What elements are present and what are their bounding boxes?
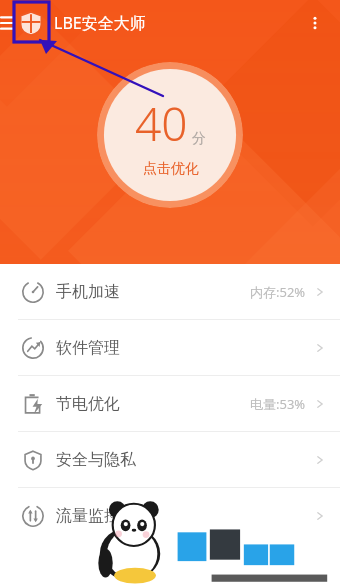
staticText: 40 [135,92,188,155]
staticText: 电量:53% [250,395,306,413]
staticText: 安全与隐私 [56,450,136,470]
button[interactable]: 流量监控 [0,488,340,543]
staticText: 手机加速 [56,282,120,302]
staticText: 软件管理 [56,338,120,358]
button[interactable]: 节电优化 [0,376,340,431]
button[interactable]: Menu [0,10,20,36]
button[interactable]: LBE logo [18,10,44,36]
button[interactable]: 手机加速 [0,264,340,319]
button[interactable]: 软件管理 [0,320,340,375]
staticText: LBE安全大师 [54,12,146,34]
staticText: 内存:52% [250,283,306,301]
staticText: 点击优化 [143,160,199,178]
staticText: 分 [192,130,206,148]
button[interactable]: 安全与隐私 [0,432,340,487]
button[interactable]: 40 [97,62,243,208]
button[interactable]: More options [300,8,330,38]
staticText: 节电优化 [56,394,120,414]
staticText: 流量监控 [56,506,120,526]
